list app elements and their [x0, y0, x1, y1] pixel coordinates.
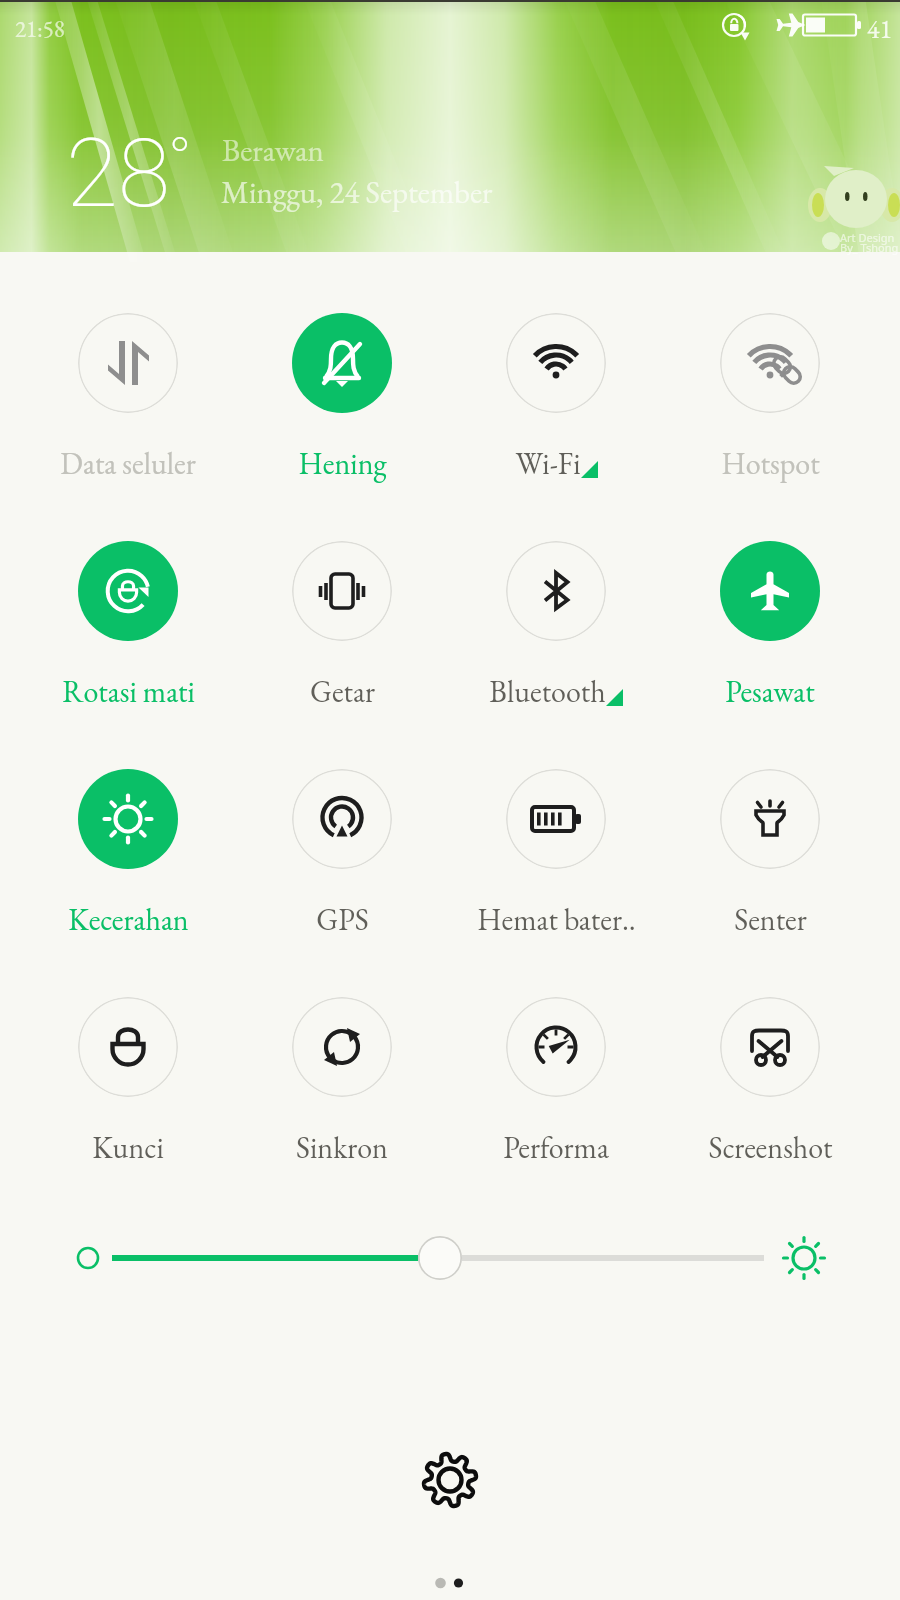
staticText: Hotspot — [721, 444, 820, 483]
button[interactable]: Brightness — [0, 1222, 900, 1298]
button[interactable]: Bluetooth — [449, 529, 663, 725]
button[interactable]: Kecerahan — [21, 757, 235, 953]
button[interactable]: Kunci — [21, 985, 235, 1181]
button[interactable]: GPS — [235, 757, 449, 953]
staticText: Kunci — [92, 1128, 164, 1167]
staticText: Sinkron — [296, 1128, 388, 1167]
button[interactable]: Hening — [235, 301, 449, 497]
staticText: Getar — [310, 672, 375, 711]
staticText: Berawan — [222, 130, 324, 170]
staticText: Art Design — [840, 230, 895, 245]
staticText: Minggu, 24 September — [221, 172, 493, 212]
staticText: Pesawat — [725, 672, 815, 711]
button[interactable]: Performa — [449, 985, 663, 1181]
staticText: ° — [168, 123, 192, 196]
button[interactable]: Wi-Fi — [449, 301, 663, 497]
staticText: Screenshot — [708, 1128, 833, 1167]
staticText: Rotasi mati — [62, 672, 195, 711]
staticText: 28 — [66, 118, 170, 229]
button[interactable]: Sinkron — [235, 985, 449, 1181]
button[interactable]: Rotasi mati — [21, 529, 235, 725]
staticText: Bluetooth — [489, 672, 606, 711]
staticText: Kecerahan — [68, 900, 189, 939]
staticText: Hemat bater.. — [477, 900, 636, 939]
staticText: Hening — [298, 444, 387, 483]
button[interactable]: Settings — [394, 1424, 506, 1536]
staticText: 41 — [867, 12, 892, 46]
button[interactable]: Getar — [235, 529, 449, 725]
button[interactable]: Senter — [663, 757, 877, 953]
staticText: 21:58 — [15, 14, 65, 44]
button[interactable]: Screenshot — [663, 985, 877, 1181]
staticText: GPS — [316, 900, 369, 939]
staticText: Performa — [503, 1128, 609, 1167]
button[interactable]: Data seluler — [21, 301, 235, 497]
staticText: Senter — [734, 900, 807, 939]
staticText: Wi-Fi — [515, 444, 581, 483]
staticText: Data seluler — [60, 444, 196, 483]
button[interactable]: Hemat bater.. — [449, 757, 663, 953]
button[interactable]: Pesawat — [663, 529, 877, 725]
button[interactable]: Hotspot — [663, 301, 877, 497]
staticText: By_ Tshong PC — [840, 240, 900, 255]
